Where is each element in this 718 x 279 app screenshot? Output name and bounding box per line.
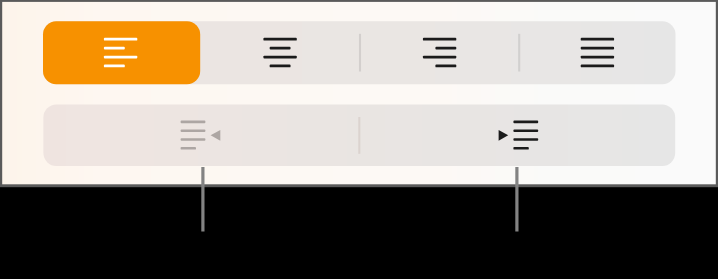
button[interactable]: Align right — [360, 21, 519, 84]
button[interactable]: Decrease indent — [43, 104, 359, 166]
button[interactable]: Increase indent — [359, 104, 675, 166]
button[interactable]: Align center — [200, 21, 360, 84]
button[interactable]: Justify — [519, 21, 675, 84]
button[interactable]: Align left — [43, 21, 200, 84]
